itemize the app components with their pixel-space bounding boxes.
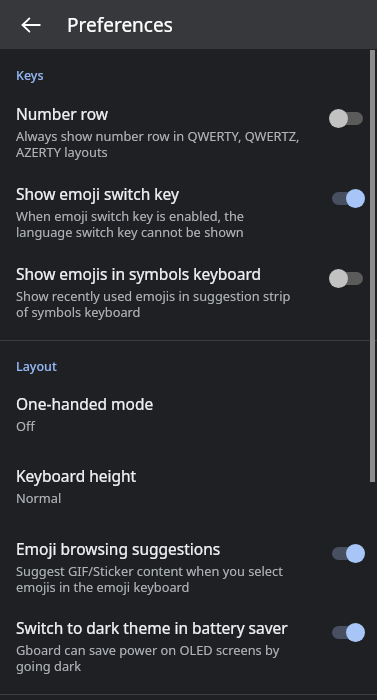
staticText: Show emojis in symbols keyboard	[16, 263, 262, 284]
staticText: Gboard can save power on OLED screens by…	[16, 641, 280, 675]
button[interactable]: On	[329, 543, 366, 563]
button[interactable]: Show emojis in symbols keyboard	[0, 263, 377, 321]
staticText: Suggest GIF/Sticker content when you sel…	[16, 562, 283, 596]
staticText: Show recently used emojis in suggestion …	[16, 287, 291, 321]
staticText: Keyboard height	[16, 465, 137, 486]
button[interactable]: Off	[329, 108, 366, 128]
staticText: Layout	[16, 358, 57, 375]
staticText: Number row	[16, 103, 108, 124]
button[interactable]: One-handed mode	[0, 393, 377, 434]
button[interactable]: Switch to dark theme in battery saver	[0, 617, 377, 675]
staticText: Keys	[16, 67, 44, 84]
staticText: Normal	[16, 489, 62, 506]
button[interactable]: Show emoji switch key	[0, 183, 377, 241]
button[interactable]: Emoji browsing suggestions	[0, 538, 377, 596]
button[interactable]: Off	[329, 268, 366, 288]
button[interactable]: On	[329, 188, 366, 208]
staticText: Always show number row in QWERTY, QWERTZ…	[16, 127, 300, 161]
staticText: When emoji switch key is enabled, the la…	[16, 207, 245, 241]
button[interactable]: Number row	[0, 103, 377, 161]
staticText: One-handed mode	[16, 393, 154, 414]
staticText: Emoji browsing suggestions	[16, 538, 221, 559]
button[interactable]: On	[329, 622, 366, 642]
staticText: Show emoji switch key	[16, 183, 179, 204]
button[interactable]: Back	[12, 6, 50, 44]
staticText: Off	[16, 417, 35, 434]
staticText: Preferences	[67, 12, 173, 38]
staticText: Switch to dark theme in battery saver	[16, 617, 288, 638]
button[interactable]: Keyboard height	[0, 465, 377, 506]
